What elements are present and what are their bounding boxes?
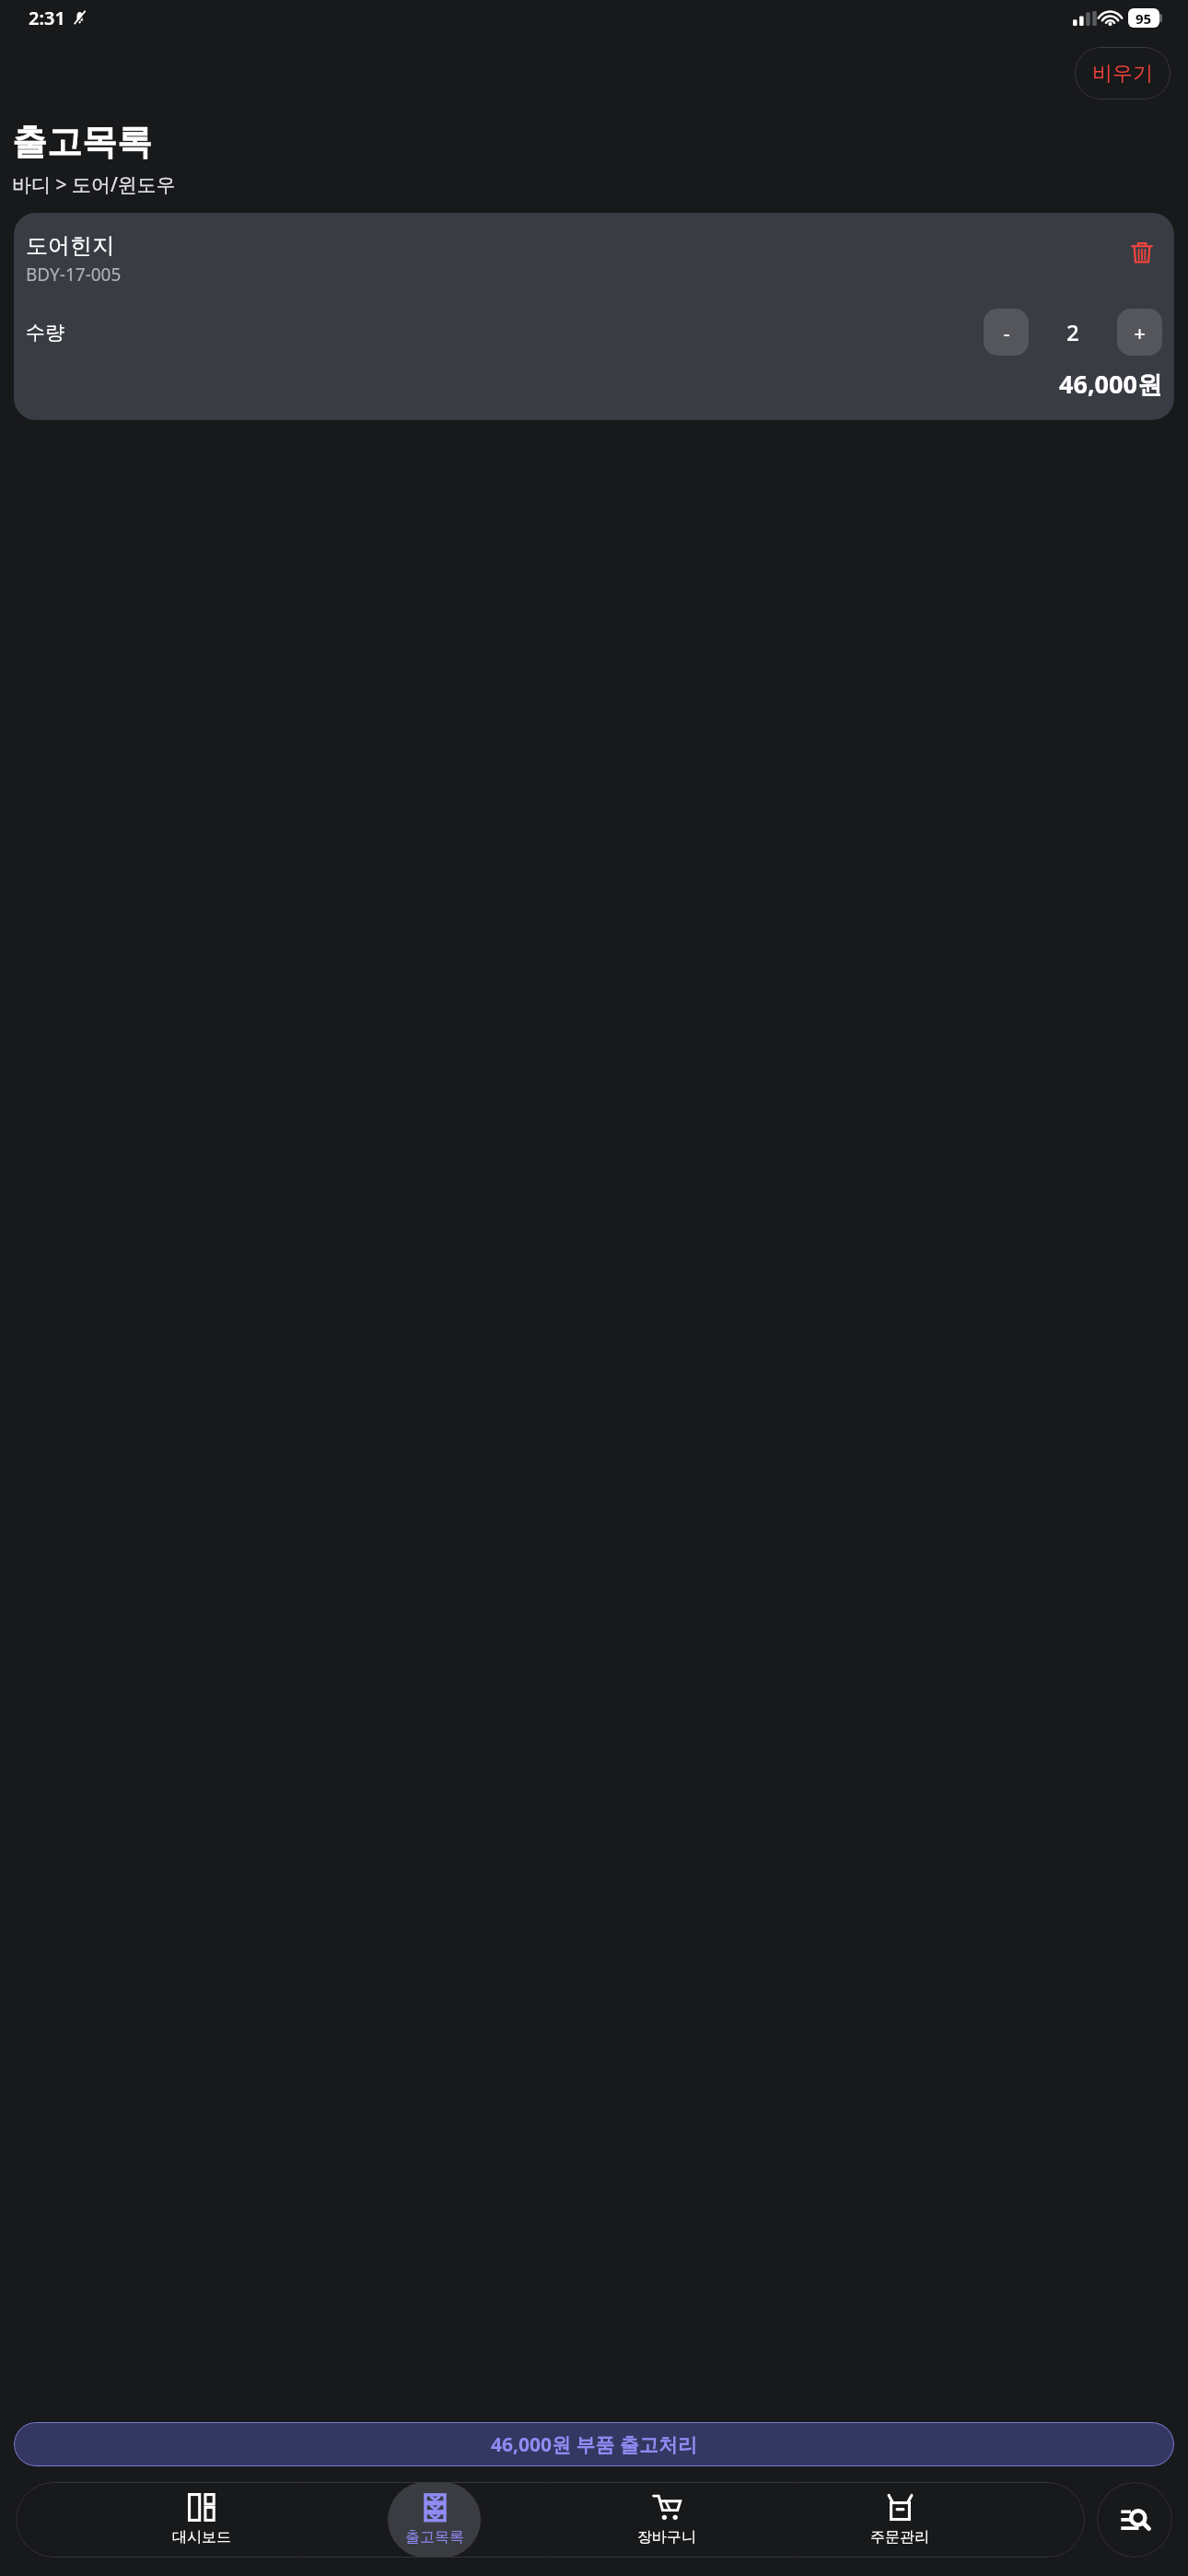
staticText: 대시보드 [172, 2528, 231, 2547]
staticText: 95 [1136, 9, 1152, 28]
staticText: 46,000원 [1059, 367, 1162, 401]
button[interactable]: Increase [1117, 309, 1162, 356]
staticText: 수량 [26, 321, 64, 345]
button[interactable]: Delete [1122, 232, 1162, 273]
staticText: 2 [1066, 317, 1079, 347]
button[interactable]: 46,000원 부품 출고처리 [14, 2422, 1174, 2466]
button[interactable]: Decrease [984, 309, 1029, 356]
staticText: 출고목록 [12, 120, 152, 164]
staticText: 도어힌지 [26, 232, 114, 260]
button[interactable]: Search [1097, 2482, 1172, 2558]
staticText: 2:31 [29, 6, 65, 30]
staticText: BDY-17-005 [26, 263, 122, 287]
staticText: 주문관리 [870, 2528, 929, 2547]
button[interactable]: 대시보드 [155, 2482, 248, 2558]
staticText: + [1134, 319, 1146, 346]
staticText: 바디 > 도어/윈도우 [12, 171, 176, 198]
staticText: 비우기 [1092, 61, 1153, 87]
button[interactable]: 장바구니 [620, 2482, 713, 2558]
button[interactable]: 비우기 [1075, 47, 1171, 100]
staticText: 장바구니 [637, 2528, 696, 2547]
staticText: 출고목록 [405, 2528, 464, 2547]
button[interactable]: 주문관리 [853, 2482, 946, 2558]
staticText: 46,000원 부품 출고처리 [491, 2431, 697, 2458]
button[interactable]: 출고목록 [388, 2482, 481, 2558]
staticText: - [1003, 319, 1010, 346]
